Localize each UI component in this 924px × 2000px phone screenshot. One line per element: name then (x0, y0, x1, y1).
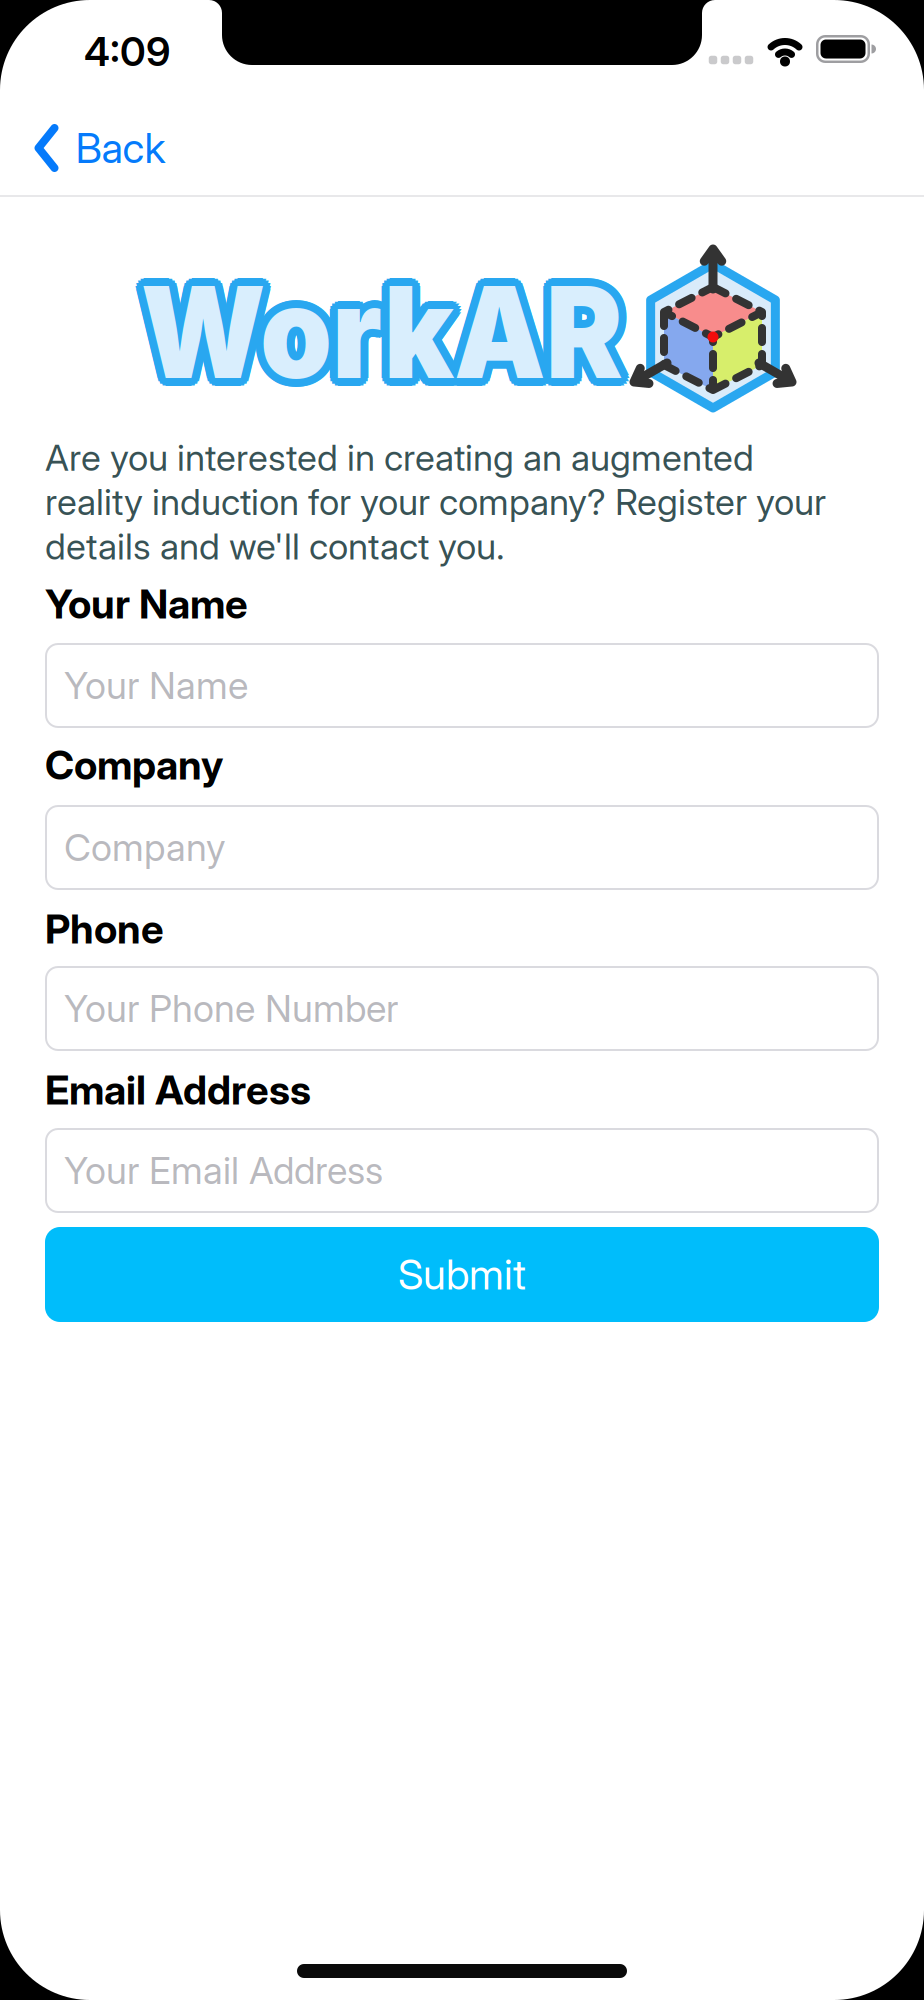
staticText: Your Name (45, 580, 248, 628)
staticText: WorkAR (117, 265, 647, 415)
staticText: Company (64, 825, 226, 869)
staticText: Your Phone Number (64, 986, 398, 1030)
staticText: WorkAR (114, 265, 644, 414)
button[interactable]: Submit (45, 1227, 879, 1322)
staticText: Your Name (64, 663, 248, 707)
staticText: Phone (45, 905, 164, 953)
staticText: WorkAR (111, 252, 641, 401)
staticText: WorkAR (117, 249, 647, 399)
button[interactable]: Your Name (45, 643, 879, 728)
staticText: WorkAR (109, 257, 639, 407)
staticText: Back (75, 124, 165, 172)
staticText: Are you interested in creating an augmen… (45, 436, 826, 568)
staticText: WorkAR (124, 254, 654, 404)
button[interactable]: Your Phone Number (45, 966, 879, 1051)
staticText: WorkAR (123, 252, 653, 401)
staticText: WorkAR (110, 260, 640, 410)
button[interactable]: Company (45, 805, 879, 890)
button[interactable]: Your Email Address (45, 1128, 879, 1213)
staticText: WorkAR (125, 257, 655, 407)
staticText: Email Address (45, 1066, 311, 1114)
staticText: WorkAR (124, 260, 654, 410)
staticText: Company (45, 741, 223, 789)
staticText: WorkAR (117, 257, 647, 407)
button[interactable]: Back (34, 124, 165, 172)
staticText: Submit (398, 1250, 526, 1299)
staticText: WorkAR (114, 250, 644, 399)
staticText: WorkAR (111, 263, 641, 412)
staticText: WorkAR (110, 254, 640, 404)
staticText: Your Email Address (64, 1148, 383, 1192)
staticText: 4:09 (84, 28, 170, 75)
staticText: WorkAR (120, 265, 650, 414)
staticText: WorkAR (123, 263, 653, 412)
staticText: WorkAR (120, 250, 650, 399)
